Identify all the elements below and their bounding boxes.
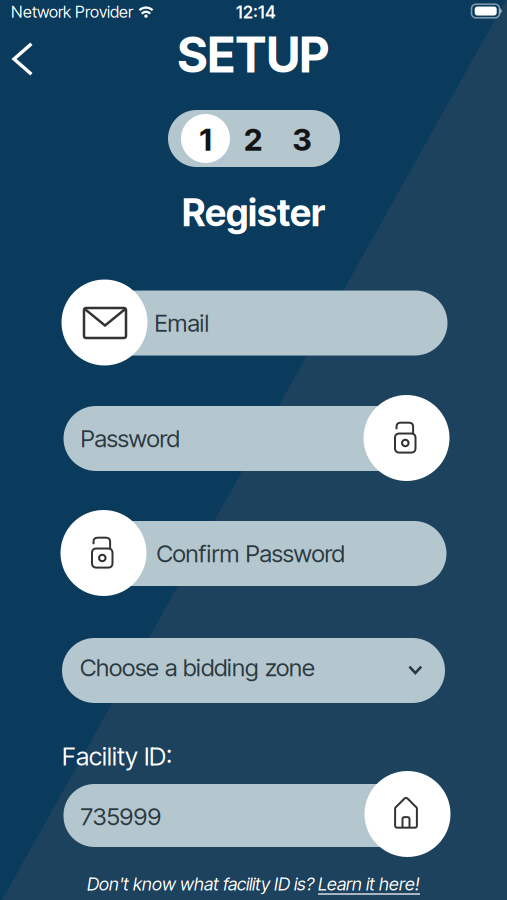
button[interactable]: Back	[0, 30, 45, 88]
button[interactable]: Password	[62, 395, 448, 481]
staticText: Password	[80, 424, 179, 453]
staticText: Register	[182, 190, 325, 235]
staticText: SETUP	[177, 26, 329, 84]
staticText: Confirm Password	[156, 539, 344, 568]
staticText: 1	[199, 121, 211, 158]
staticText: Email	[154, 308, 209, 337]
staticText: 12:14	[236, 2, 276, 23]
staticText: Network Provider	[11, 2, 133, 22]
staticText: 3	[292, 121, 311, 158]
button[interactable]: Confirm Password	[62, 510, 448, 596]
staticText: 735999	[80, 802, 161, 831]
staticText: Don't know what facility ID is?	[87, 873, 318, 895]
staticText: Learn it here!	[318, 873, 420, 895]
button[interactable]: 1	[168, 110, 340, 167]
button[interactable]: Email	[63, 278, 449, 365]
button[interactable]: Choose a bidding zone	[62, 638, 445, 703]
staticText: Facility ID:	[62, 741, 172, 772]
button[interactable]: 735999	[62, 774, 448, 858]
staticText: Choose a bidding zone	[80, 653, 315, 682]
staticText: 2	[244, 121, 262, 158]
button[interactable]: Learn it here!	[318, 873, 420, 895]
